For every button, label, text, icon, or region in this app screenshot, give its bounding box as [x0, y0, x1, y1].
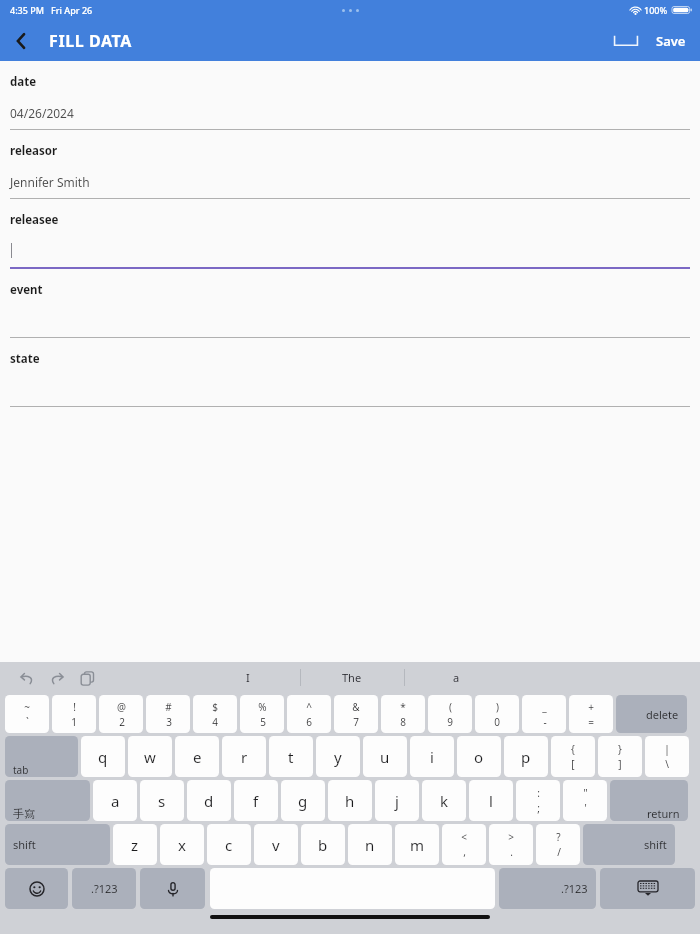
button[interactable]: g	[281, 780, 325, 821]
staticText: releasor	[10, 143, 58, 159]
button[interactable]: +	[569, 695, 613, 733]
staticText: .?123	[561, 881, 588, 896]
button[interactable]: m	[395, 824, 439, 865]
button[interactable]: t	[269, 736, 313, 777]
staticText: \	[665, 757, 669, 771]
button[interactable]: y	[316, 736, 360, 777]
button[interactable]: d	[187, 780, 231, 821]
staticText: c	[225, 835, 233, 855]
button[interactable]: I	[196, 662, 300, 693]
button[interactable]: f	[234, 780, 278, 821]
staticText: v	[272, 835, 280, 855]
button[interactable]: Emoji	[5, 868, 68, 909]
staticText: 04/26/2024	[10, 105, 74, 121]
button[interactable]: _	[522, 695, 566, 733]
button[interactable]: Undo	[14, 665, 40, 691]
button[interactable]: |	[645, 736, 689, 777]
staticText: l	[489, 791, 493, 811]
button[interactable]: date	[0, 61, 700, 130]
button[interactable]: !	[52, 695, 96, 733]
button[interactable]: Paste	[74, 665, 100, 691]
staticText: e	[193, 747, 202, 767]
staticText: /	[557, 845, 561, 859]
button[interactable]: j	[375, 780, 419, 821]
button[interactable]: "	[563, 780, 607, 821]
button[interactable]: (	[428, 695, 472, 733]
staticText: }	[618, 742, 622, 756]
staticText: p	[521, 747, 531, 767]
button[interactable]: .?123	[499, 868, 596, 909]
button[interactable]: }	[598, 736, 642, 777]
button[interactable]: q	[81, 736, 125, 777]
button[interactable]: delete	[616, 695, 687, 733]
button[interactable]: Save	[652, 26, 690, 56]
staticText: g	[298, 791, 308, 811]
button[interactable]: releasor	[0, 130, 700, 199]
button[interactable]: p	[504, 736, 548, 777]
staticText: ,	[463, 845, 466, 859]
staticText: .	[510, 845, 513, 859]
button[interactable]: Hide keyboard	[600, 868, 695, 909]
button[interactable]: %	[240, 695, 284, 733]
button[interactable]: releasee	[0, 199, 700, 269]
button[interactable]: Redo	[44, 665, 70, 691]
button[interactable]: u	[363, 736, 407, 777]
staticText: h	[345, 791, 355, 811]
staticText: 手寫	[13, 807, 35, 821]
button[interactable]: tab	[5, 736, 78, 777]
button[interactable]: o	[457, 736, 501, 777]
staticText: k	[440, 791, 449, 811]
button[interactable]: Back	[0, 20, 42, 61]
button[interactable]: ^	[287, 695, 331, 733]
button[interactable]: w	[128, 736, 172, 777]
staticText: 7	[353, 715, 359, 729]
button[interactable]: x	[160, 824, 204, 865]
button[interactable]: shift	[583, 824, 675, 865]
button[interactable]: The	[300, 662, 404, 693]
button[interactable]: ?	[536, 824, 580, 865]
button[interactable]: e	[175, 736, 219, 777]
button[interactable]: 手寫	[5, 780, 90, 821]
button[interactable]: state	[0, 338, 700, 407]
button[interactable]: a	[404, 662, 508, 693]
button[interactable]: s	[140, 780, 184, 821]
button[interactable]: z	[113, 824, 157, 865]
button[interactable]: i	[410, 736, 454, 777]
button[interactable]: a	[93, 780, 137, 821]
button[interactable]: &	[334, 695, 378, 733]
staticText: 4:35 PM	[10, 4, 44, 16]
staticText: m	[410, 835, 425, 855]
button[interactable]: c	[207, 824, 251, 865]
staticText: event	[10, 282, 43, 298]
staticText: =	[588, 715, 594, 729]
button[interactable]: l	[469, 780, 513, 821]
button[interactable]: v	[254, 824, 298, 865]
staticText: .?123	[91, 881, 118, 896]
button[interactable]: :	[516, 780, 560, 821]
button[interactable]: k	[422, 780, 466, 821]
staticText: $	[212, 700, 218, 714]
staticText: w	[144, 747, 156, 767]
button[interactable]: .?123	[72, 868, 136, 909]
button[interactable]: )	[475, 695, 519, 733]
staticText: ;	[537, 801, 540, 815]
button[interactable]: @	[99, 695, 143, 733]
button[interactable]: shift	[5, 824, 110, 865]
button[interactable]: *	[381, 695, 425, 733]
button[interactable]: h	[328, 780, 372, 821]
button[interactable]: event	[0, 269, 700, 338]
button[interactable]: n	[348, 824, 392, 865]
button[interactable]: {	[551, 736, 595, 777]
button[interactable]: b	[301, 824, 345, 865]
button[interactable]: #	[146, 695, 190, 733]
button[interactable]: >	[489, 824, 533, 865]
button[interactable]: r	[222, 736, 266, 777]
button[interactable]: return	[610, 780, 688, 821]
button[interactable]: <	[442, 824, 486, 865]
button[interactable]: Hide keyboard	[606, 20, 646, 61]
button[interactable]: ~	[5, 695, 49, 733]
button[interactable]: Dictate	[140, 868, 205, 909]
button[interactable]: $	[193, 695, 237, 733]
staticText: *	[400, 700, 406, 714]
